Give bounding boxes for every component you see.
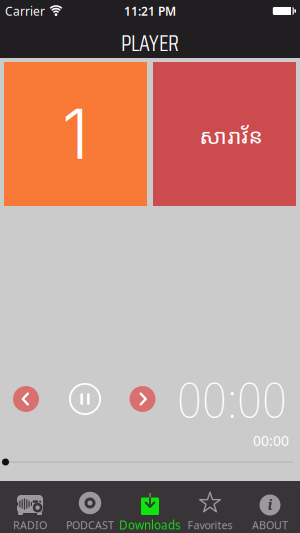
button[interactable]: PODCAST	[60, 481, 120, 533]
button[interactable]: i	[240, 481, 300, 533]
button[interactable]: សារាវ័ន	[153, 62, 296, 206]
staticText: Downloads	[119, 517, 181, 533]
button[interactable]: Favorites	[180, 481, 240, 533]
staticText: PLAYER	[121, 26, 179, 61]
staticText: PODCAST	[66, 518, 114, 532]
button[interactable]: Previous	[13, 386, 39, 412]
staticText: RADIO	[13, 518, 47, 532]
staticText: 00:00	[177, 366, 287, 432]
button[interactable]: Downloads	[120, 481, 180, 533]
button[interactable]: Pause	[69, 383, 101, 415]
button[interactable]: Seek	[0, 458, 300, 465]
staticText: i	[267, 495, 272, 514]
button[interactable]: RADIO	[0, 481, 60, 533]
staticText: 11:21 PM	[124, 3, 176, 19]
staticText: Carrier	[5, 3, 45, 19]
staticText: Favorites	[187, 518, 232, 532]
staticText: 1	[62, 93, 89, 175]
button[interactable]: 1	[4, 62, 147, 206]
staticText: 00:00	[253, 431, 289, 450]
staticText: ABOUT	[252, 518, 288, 532]
button[interactable]: Next	[129, 386, 155, 412]
staticText: សារាវ័ន	[199, 125, 262, 156]
